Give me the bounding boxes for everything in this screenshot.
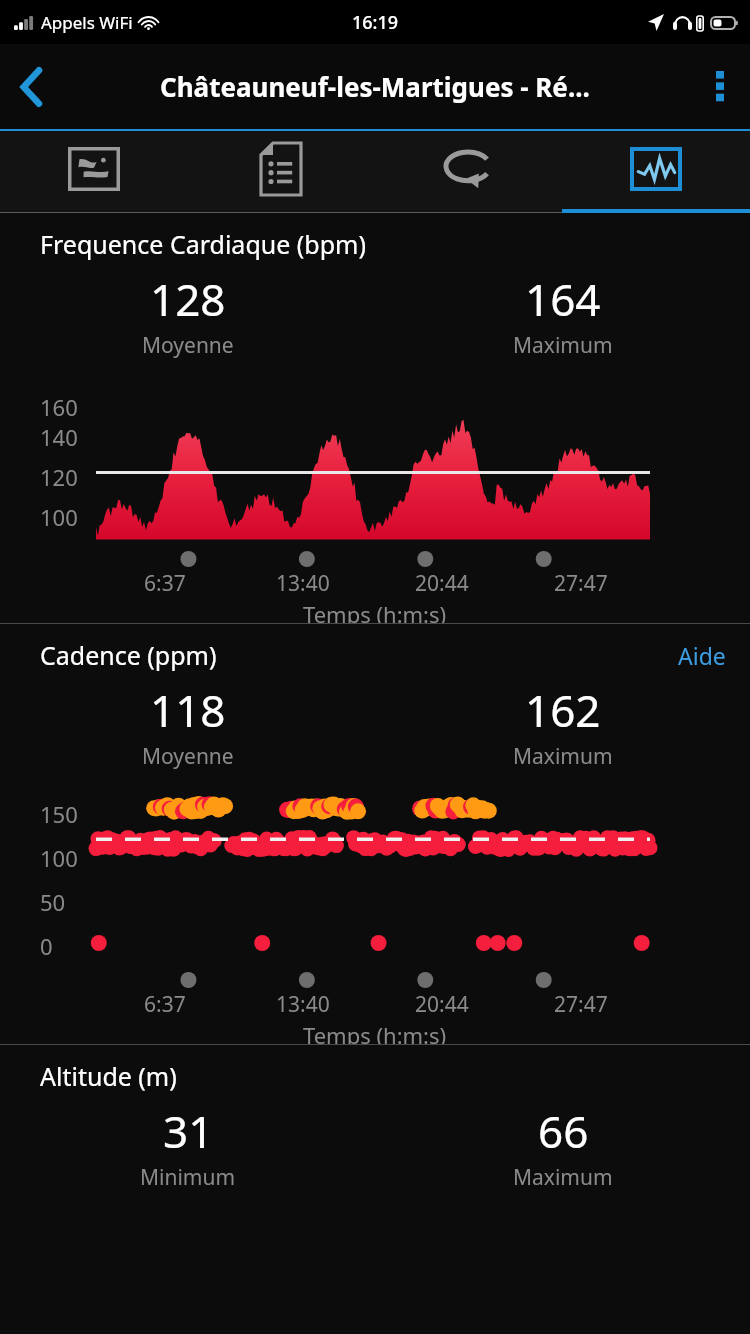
staticText: 0 <box>40 931 53 961</box>
staticText: 100 <box>40 502 78 532</box>
staticText: 118 <box>150 680 226 740</box>
staticText: Frequence Cardiaque (bpm) <box>40 227 366 261</box>
staticText: 150 <box>40 799 78 829</box>
button[interactable]: Aide <box>678 640 726 671</box>
button[interactable]: Charts <box>562 131 750 213</box>
staticText: 160 <box>40 392 78 422</box>
staticText: Maximum <box>513 1163 613 1192</box>
staticText: 13:40 <box>276 990 330 1019</box>
staticText: Appels WiFi <box>41 11 133 34</box>
staticText: Temps (h:m:s) <box>303 599 447 623</box>
staticText: 140 <box>40 422 78 452</box>
staticText: Temps (h:m:s) <box>303 1020 447 1044</box>
staticText: 6:37 <box>144 569 186 598</box>
staticText: 6:37 <box>144 990 186 1019</box>
staticText: 20:44 <box>415 569 469 598</box>
staticText: 162 <box>525 680 601 740</box>
staticText: Minimum <box>140 1163 236 1192</box>
button[interactable]: Laps <box>374 131 562 213</box>
button[interactable]: Map <box>0 131 187 213</box>
staticText: 27:47 <box>554 990 608 1019</box>
staticText: Altitude (m) <box>40 1059 177 1093</box>
staticText: Maximum <box>513 331 613 360</box>
button[interactable]: Details <box>187 131 374 213</box>
staticText: 16:19 <box>352 10 399 35</box>
button[interactable]: Back <box>0 44 64 129</box>
staticText: 50 <box>40 887 66 917</box>
staticText: 100 <box>40 843 78 873</box>
staticText: 27:47 <box>554 569 608 598</box>
staticText: 66 <box>538 1101 589 1161</box>
staticText: Cadence (ppm) <box>40 638 217 672</box>
staticText: 164 <box>525 269 601 329</box>
staticText: 13:40 <box>276 569 330 598</box>
button[interactable]: More options <box>690 44 750 129</box>
staticText: Moyenne <box>142 742 234 771</box>
staticText: Aide <box>678 640 726 671</box>
staticText: Châteauneuf-les-Martigues - Ré... <box>160 69 590 104</box>
staticText: 31 <box>163 1101 214 1161</box>
staticText: Moyenne <box>142 331 234 360</box>
staticText: Maximum <box>513 742 613 771</box>
staticText: 20:44 <box>415 990 469 1019</box>
staticText: 128 <box>150 269 226 329</box>
staticText: 120 <box>40 462 78 492</box>
